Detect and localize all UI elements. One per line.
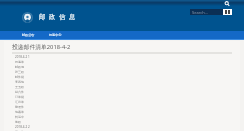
staticText: 邮件袋 [15,75,24,79]
button[interactable]: 王五收 [15,85,240,90]
staticText: 整理件 [15,105,24,109]
button[interactable]: 整理件 [15,105,240,110]
button[interactable]: 邮件袋 [15,75,240,80]
button[interactable]: 李四包 [15,80,240,85]
staticText: Search... [192,10,208,15]
button[interactable]: 订单袋 [15,95,240,100]
staticText: 李四包 [15,80,24,84]
button[interactable]: 汇总单 [15,100,240,105]
button[interactable]: 赵六件 [15,90,240,95]
button[interactable]: 邮政局 [15,65,240,70]
staticText: 投递邮件清单2018-4-2 [12,43,71,51]
staticText: 投递中心 [49,33,62,37]
staticText: 订单袋 [15,95,24,99]
button[interactable]: 邮政公告 [22,31,35,39]
staticText: 赵六件 [15,90,24,94]
staticText: 签收 [15,120,21,124]
button[interactable]: 转运中 [15,115,240,120]
staticText: 邮政信息 [39,13,79,21]
staticText: 包裹单 [15,110,24,114]
staticText: 2018-4-2 2 [15,125,30,129]
staticText: 邮政公告 [22,33,35,37]
button[interactable]: 包裹单 [15,110,240,115]
staticText: 第二件 [15,130,24,131]
button[interactable]: 投递中心 [49,31,62,39]
staticText: 汇总单 [15,100,24,104]
button[interactable]: 签收 [15,120,240,125]
staticText: 邮政局 [15,65,24,69]
button[interactable]: Search... [190,9,223,15]
staticText: 王五收 [15,85,24,89]
staticText: 2018-4-2 1 [15,55,30,59]
button[interactable]: 投递单 [15,60,240,65]
button[interactable]: 2018-4-2 1 [15,55,240,60]
button[interactable]: 张三收 [15,70,240,75]
button[interactable]: 2018-4-2 2 [15,125,240,130]
staticText: 转运中 [15,115,24,119]
staticText: 张三收 [15,70,24,74]
button[interactable]: Search [224,0,232,8]
button[interactable]: Submit search [223,9,232,15]
staticText: 投递单 [15,60,24,64]
